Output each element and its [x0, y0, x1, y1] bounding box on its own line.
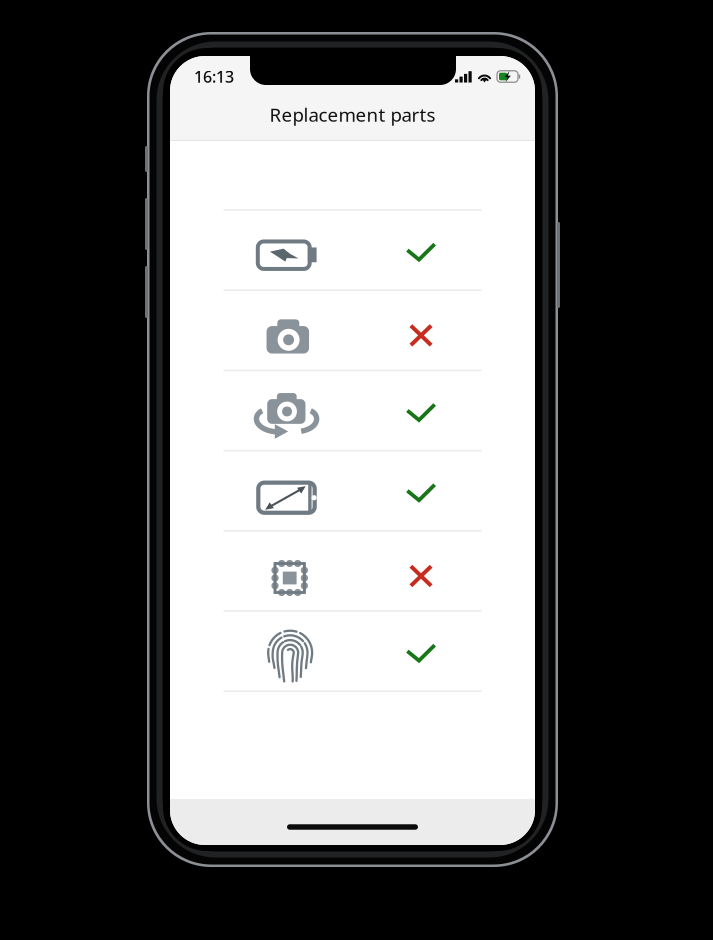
staticText: Replacement parts: [269, 102, 435, 127]
button[interactable]: Processor: [223, 532, 481, 612]
button[interactable]: Fingerprint sensor: [223, 612, 481, 692]
button[interactable]: Battery: [223, 211, 481, 291]
button[interactable]: Display: [223, 451, 481, 532]
button[interactable]: Front camera: [223, 371, 481, 451]
button[interactable]: Rear camera: [223, 291, 481, 371]
staticText: 16:13: [194, 66, 234, 87]
